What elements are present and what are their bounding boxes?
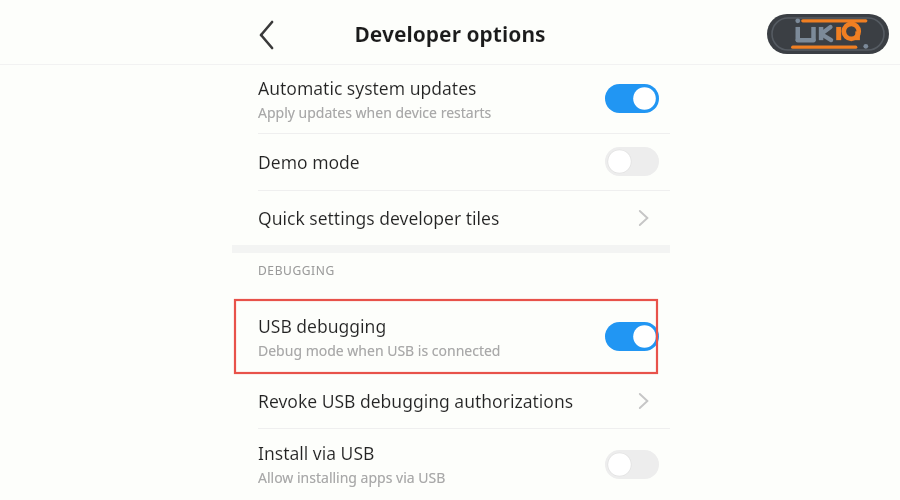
button[interactable]: USB debugging [232,300,670,373]
button[interactable]: Quick settings developer tiles [232,190,670,245]
staticText: Debug mode when USB is connected [258,341,501,360]
staticText: Revoke USB debugging authorizations [258,389,574,413]
staticText: Quick settings developer tiles [258,206,500,230]
staticText: DEBUGGING [258,262,335,278]
button[interactable]: Revoke USB debugging authorizations [232,373,670,428]
button[interactable]: Back [246,14,288,56]
button[interactable]: Toggle on [605,322,659,351]
button[interactable]: Toggle off [605,147,659,176]
staticText: Automatic system updates [258,76,477,100]
staticText: Developer options [354,20,546,49]
staticText: Install via USB [258,441,375,465]
button[interactable]: Toggle on [605,84,659,113]
button[interactable]: Install via USB [232,428,670,500]
button[interactable]: Automatic system updates [232,64,670,133]
staticText: Allow installing apps via USB [258,468,446,487]
button[interactable]: Demo mode [232,133,670,190]
button[interactable]: Toggle off [605,450,659,479]
staticText: Apply updates when device restarts [258,103,492,122]
staticText: USB debugging [258,314,387,338]
staticText: Demo mode [258,150,360,174]
